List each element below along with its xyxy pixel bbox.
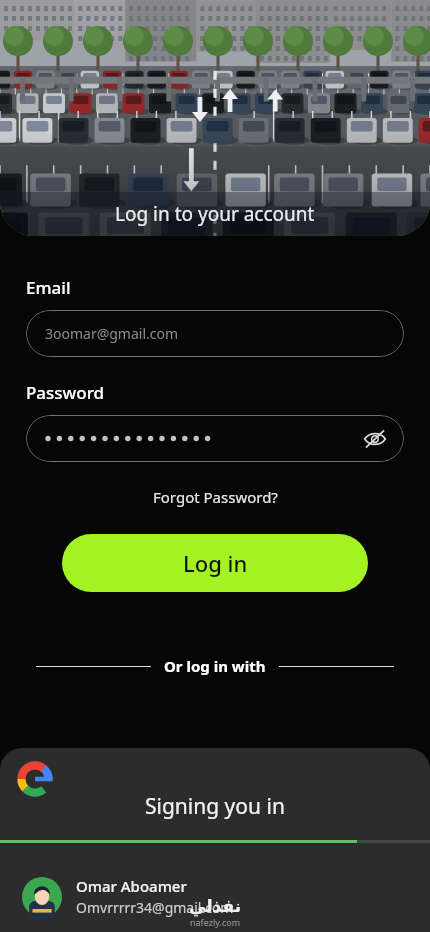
staticText: Log in <box>183 548 248 578</box>
staticText: Forgot Password? <box>153 487 278 507</box>
staticText: Omar Aboamer <box>76 876 187 896</box>
button[interactable]: Show password <box>358 422 392 456</box>
staticText: نفذلي <box>189 896 242 916</box>
staticText: Email <box>26 276 71 299</box>
button[interactable]: Forgot Password? <box>147 481 284 513</box>
staticText: Or log in with <box>164 656 266 676</box>
staticText: Log in to your account <box>115 201 315 227</box>
staticText: 3oomar@gmail.com <box>45 324 179 343</box>
staticText: nafezly.com <box>190 916 241 928</box>
staticText: Password <box>26 381 105 404</box>
button[interactable]: Show password <box>26 415 404 462</box>
staticText: Signing you in <box>145 792 285 821</box>
button[interactable]: Log in <box>62 534 368 592</box>
button[interactable]: 3oomar@gmail.com <box>26 310 404 357</box>
staticText: Omvrrrrr34@gmail.com <box>76 898 234 917</box>
